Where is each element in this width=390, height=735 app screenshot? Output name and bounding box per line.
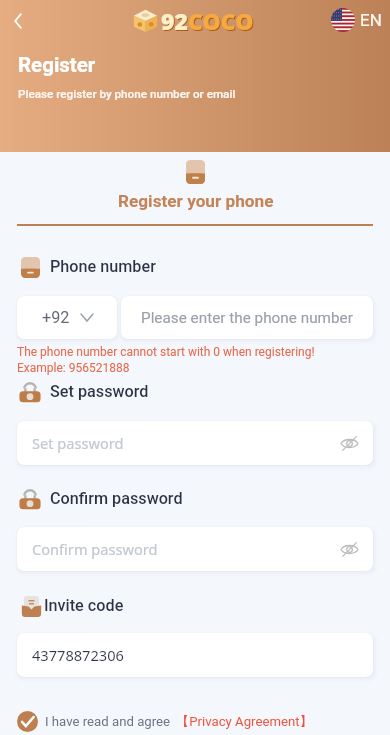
button[interactable]: 43778872306 — [17, 633, 373, 677]
button[interactable]: Show password — [337, 431, 361, 455]
staticText: +92 — [42, 308, 70, 327]
staticText: Confirm password — [50, 489, 183, 508]
staticText: Register — [18, 53, 96, 77]
staticText: Example: 956521888 — [17, 361, 130, 375]
staticText: Set password — [50, 382, 149, 401]
staticText: 92 — [161, 5, 188, 36]
staticText: I have read and agree — [45, 714, 171, 729]
staticText: The phone number cannot start with 0 whe… — [17, 345, 315, 359]
staticText: Confirm password — [32, 539, 158, 559]
staticText: 【Privacy Agreement】 — [176, 713, 313, 730]
staticText: 43778872306 — [32, 645, 124, 665]
staticText: Register your phone — [118, 191, 274, 211]
button[interactable]: Set password — [17, 421, 373, 465]
button[interactable]: Please enter the phone number — [121, 296, 373, 339]
button[interactable]: EN — [331, 8, 382, 32]
staticText: Phone number — [50, 257, 156, 276]
button[interactable]: Confirm password — [17, 527, 373, 571]
button[interactable]: Back — [4, 7, 32, 35]
staticText: Please enter the phone number — [141, 309, 353, 327]
staticText: Please register by phone number or email — [18, 87, 236, 101]
staticText: COCO — [188, 5, 254, 36]
staticText: 92 — [162, 6, 189, 37]
staticText: Invite code — [44, 596, 124, 615]
button[interactable]: I have read and agree — [17, 711, 313, 732]
button[interactable]: +92 — [17, 296, 117, 339]
button[interactable]: Show password — [337, 537, 361, 561]
staticText: EN — [360, 10, 382, 30]
staticText: COCO — [189, 6, 255, 37]
staticText: Set password — [32, 433, 124, 453]
